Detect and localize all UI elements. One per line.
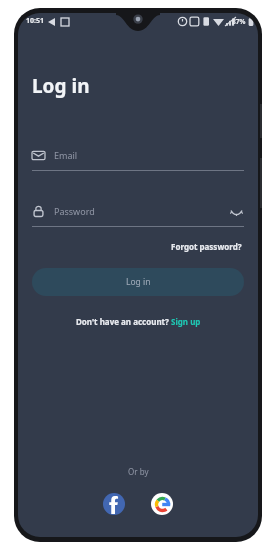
staticText: Email	[54, 149, 78, 161]
staticText: 10:51	[26, 16, 44, 26]
button[interactable]: Log in	[32, 268, 244, 296]
button[interactable]: Show password	[228, 203, 244, 219]
staticText: Or by	[128, 466, 149, 477]
button[interactable]: Forgot password?	[169, 239, 244, 254]
staticText: Log in	[32, 73, 90, 99]
button[interactable]: Password	[32, 201, 244, 221]
staticText: Log in	[126, 276, 151, 288]
button[interactable]: Sign up	[171, 316, 201, 327]
button[interactable]: Sign in with Google	[151, 493, 173, 515]
staticText: Don't have an account?	[76, 316, 171, 327]
button[interactable]: Sign in with Facebook	[103, 493, 125, 515]
button[interactable]: Email	[32, 145, 244, 165]
staticText: 87%	[232, 17, 246, 26]
staticText: Password	[54, 205, 95, 217]
staticText: Sign up	[171, 316, 201, 327]
staticText: Forgot password?	[171, 241, 242, 252]
